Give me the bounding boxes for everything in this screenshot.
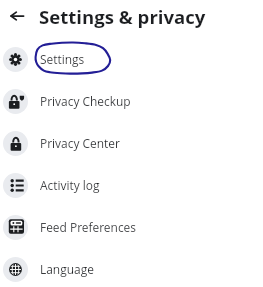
button[interactable]: Activity log [0,164,263,206]
button[interactable]: Privacy Checkup [0,80,263,122]
staticText: Privacy Center [40,135,120,151]
staticText: Settings [40,51,85,67]
button[interactable]: Settings [0,38,263,80]
staticText: Feed Preferences [40,219,136,235]
staticText: Language [40,261,94,277]
button[interactable]: Privacy Center [0,122,263,164]
button[interactable]: Back [2,1,32,31]
staticText: Privacy Checkup [40,93,131,109]
button[interactable]: Language [0,248,263,287]
staticText: Activity log [40,177,100,193]
staticText: Settings & privacy [39,4,206,29]
button[interactable]: Feed Preferences [0,206,263,248]
